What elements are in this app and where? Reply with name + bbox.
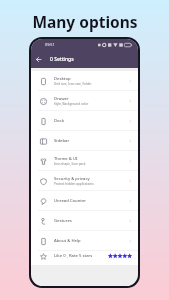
- button[interactable]: Back: [33, 54, 43, 64]
- staticText: Unread Counter: [54, 198, 87, 204]
- button[interactable]: Security & privacy: [31, 171, 138, 191]
- staticText: Protect hidden applications: [54, 182, 94, 186]
- staticText: Like 0 , Rate 5 stars: [54, 253, 93, 259]
- button[interactable]: Gestures: [31, 211, 138, 231]
- staticText: Sidebar: [54, 138, 70, 144]
- button[interactable]: Sidebar: [31, 131, 138, 151]
- staticText: Drawer: [54, 96, 69, 102]
- button[interactable]: Like 0 , Rate 5 stars: [31, 251, 138, 265]
- staticText: Dock: [54, 118, 65, 124]
- staticText: Gestures: [54, 218, 72, 224]
- button[interactable]: Unread Counter: [31, 191, 138, 211]
- staticText: Icon shape, Icon pack: [54, 162, 86, 166]
- staticText: 09:51: [45, 42, 55, 47]
- button[interactable]: About & Help: [31, 231, 138, 251]
- button[interactable]: Theme & UI: [31, 151, 138, 171]
- staticText: Style, Background color: [54, 102, 89, 106]
- staticText: Security & privacy: [54, 176, 90, 182]
- staticText: Grid size, Icon size, Folder: [54, 82, 92, 86]
- staticText: Many options: [32, 11, 138, 32]
- staticText: About & Help: [54, 238, 81, 244]
- staticText: Desktop: [54, 76, 71, 82]
- staticText: 0 Settings: [50, 56, 74, 63]
- button[interactable]: Dock: [31, 111, 138, 131]
- button[interactable]: Desktop: [31, 71, 138, 91]
- staticText: Theme & UI: [54, 156, 78, 162]
- button[interactable]: Drawer: [31, 91, 138, 111]
